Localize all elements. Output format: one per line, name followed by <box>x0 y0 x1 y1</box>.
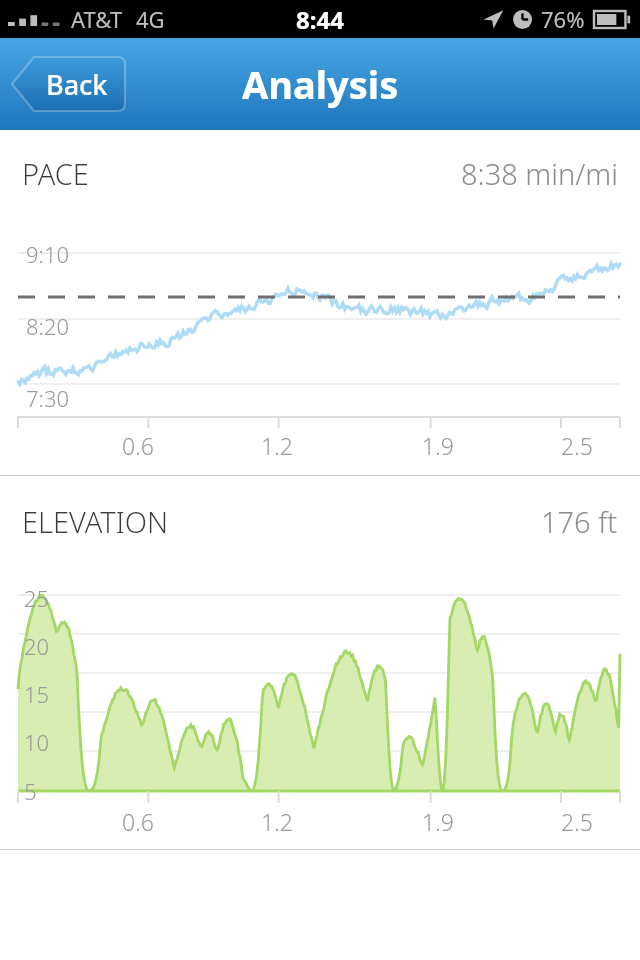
staticText: 176 ft <box>541 502 618 541</box>
staticText: 1.9 <box>422 430 454 461</box>
staticText: AT&T <box>71 4 123 34</box>
staticText: 15 <box>24 679 50 709</box>
staticText: 2.5 <box>561 430 593 461</box>
staticText: Analysis <box>242 58 399 110</box>
staticText: 20 <box>24 631 50 661</box>
staticText: 1.9 <box>422 806 454 837</box>
staticText: 76% <box>541 4 585 34</box>
staticText: 8:20 <box>26 311 70 341</box>
staticText: 4G <box>136 4 165 34</box>
staticText: 8:44 <box>296 3 344 36</box>
staticText: 0.6 <box>122 430 154 461</box>
staticText: 7:30 <box>26 383 70 413</box>
staticText: 1.2 <box>261 806 293 837</box>
staticText: PACE <box>22 154 89 193</box>
staticText: ELEVATION <box>22 502 169 541</box>
staticText: 5 <box>24 776 37 805</box>
staticText: 0.6 <box>122 806 154 837</box>
button[interactable]: Back <box>10 55 126 113</box>
staticText: 1.2 <box>261 430 293 461</box>
staticText: 25 <box>24 583 50 613</box>
staticText: 10 <box>24 727 50 757</box>
staticText: 2.5 <box>561 806 593 837</box>
staticText: 9:10 <box>26 239 70 269</box>
staticText: 8:38 min/mi <box>461 154 618 193</box>
staticText: Back <box>46 66 108 103</box>
